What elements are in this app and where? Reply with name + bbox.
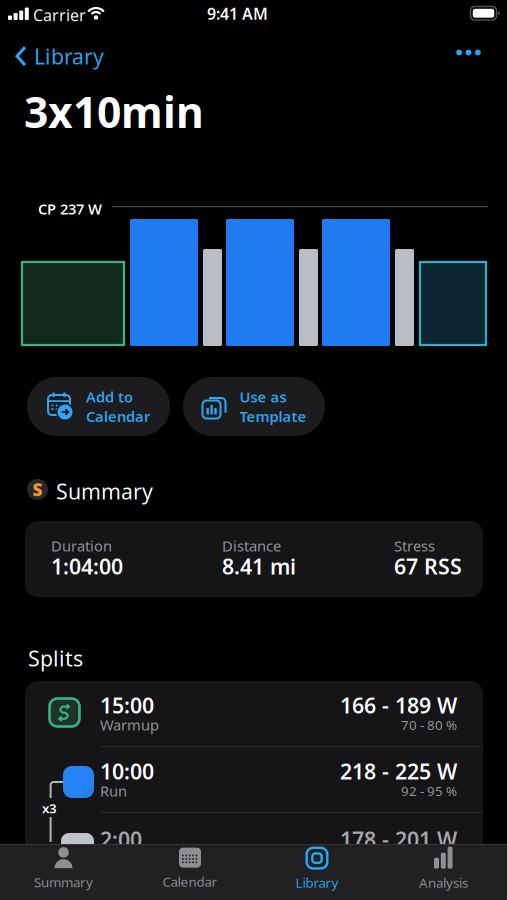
staticText: 92 - 95 %: [401, 782, 457, 800]
button[interactable]: 2:00: [25, 813, 483, 879]
staticText: 70 - 80 %: [401, 716, 457, 734]
button[interactable]: Analysis: [419, 847, 468, 891]
staticText: Calendar: [86, 406, 150, 426]
button[interactable]: Library: [295, 847, 338, 891]
staticText: 1:04:00: [51, 552, 123, 580]
staticText: S: [32, 478, 42, 501]
staticText: 3x10min: [24, 83, 204, 140]
staticText: 67 RSS: [394, 552, 462, 580]
staticText: Library: [34, 42, 104, 70]
staticText: x3: [42, 799, 57, 817]
staticText: Run: [100, 781, 127, 800]
staticText: Distance: [222, 536, 281, 555]
staticText: 218 - 225 W: [340, 757, 457, 785]
staticText: 15:00: [100, 691, 154, 719]
staticText: Calendar: [162, 873, 217, 890]
button[interactable]: Calendar: [162, 848, 217, 890]
staticText: 10:00: [100, 757, 154, 785]
staticText: Analysis: [419, 874, 468, 891]
staticText: Carrier: [33, 4, 86, 26]
staticText: 178 - 201 W: [340, 825, 457, 853]
staticText: 2:00: [100, 825, 142, 853]
staticText: 8.41 mi: [222, 552, 296, 580]
staticText: CP 237 W: [38, 199, 102, 218]
button[interactable]: 10:00: [25, 747, 483, 813]
staticText: 166 - 189 W: [340, 691, 457, 719]
staticText: Warmup: [100, 715, 159, 734]
button[interactable]: Add to: [27, 377, 170, 436]
staticText: Duration: [51, 536, 112, 555]
button[interactable]: Use as: [183, 377, 325, 436]
staticText: Template: [239, 406, 306, 426]
staticText: Summary: [56, 477, 153, 505]
button[interactable]: 15:00: [25, 681, 483, 746]
button[interactable]: Back: [15, 42, 104, 70]
button[interactable]: Summary: [34, 847, 93, 891]
staticText: Library: [295, 874, 338, 891]
staticText: Splits: [28, 644, 83, 672]
staticText: Summary: [34, 873, 93, 891]
staticText: Add to: [86, 387, 133, 406]
staticText: Use as: [239, 387, 286, 406]
staticText: Stress: [394, 536, 435, 555]
button[interactable]: More: [456, 50, 481, 55]
staticText: 9:41 AM: [207, 3, 268, 24]
